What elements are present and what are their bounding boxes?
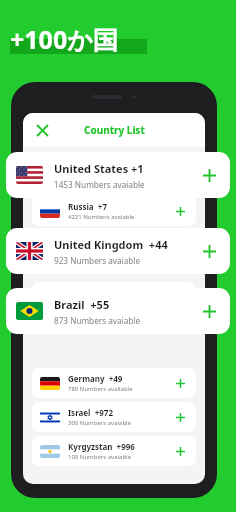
button[interactable]: Brazil +55	[6, 288, 230, 334]
button[interactable]: Add Israel	[172, 409, 188, 425]
staticText: United Kingdom +44	[54, 237, 168, 252]
staticText: Germany +49	[68, 373, 123, 384]
staticText: Israel +972	[68, 407, 113, 418]
staticText: 923 Numbers avaiable	[54, 255, 141, 266]
staticText: Russia +7	[68, 201, 107, 212]
button[interactable]: Add United Kingdom	[198, 240, 220, 262]
button[interactable]: Russia +7	[32, 196, 196, 226]
staticText: +100か国	[10, 22, 118, 56]
button[interactable]: Israel +972	[32, 402, 196, 432]
button[interactable]: Kyrgyzstan +996	[32, 436, 196, 466]
staticText: 100 Numbers avaiable	[68, 453, 132, 461]
button[interactable]: Add Brazil	[198, 300, 220, 322]
button[interactable]: Add Kyrgyzstan	[172, 443, 188, 459]
button[interactable]: Add Germany	[172, 375, 188, 391]
staticText: 1453 Numbers avaiable	[54, 179, 145, 190]
staticText: Kyrgyzstan +996	[68, 441, 135, 452]
staticText: 873 Numbers avaiable	[54, 315, 141, 326]
staticText: United States +1	[54, 161, 144, 176]
staticText: 300 Numbers avaiable	[68, 419, 132, 427]
staticText: Brazil +55	[54, 297, 110, 312]
button[interactable]: Close	[32, 120, 52, 140]
button[interactable]: United Kingdom +44	[6, 228, 230, 274]
staticText: Country List	[84, 123, 145, 137]
staticText: 4221 Numbers avaiable	[68, 213, 135, 221]
staticText: 780 Numbers available	[68, 385, 133, 393]
button[interactable]: Add United States	[198, 164, 220, 186]
button[interactable]: United States +1	[6, 152, 230, 198]
button[interactable]: Germany +49	[32, 368, 196, 398]
button[interactable]: Add Russia	[172, 203, 188, 219]
button[interactable]: Canada +1	[32, 282, 196, 312]
staticText: 564 Numbers available	[68, 299, 133, 307]
